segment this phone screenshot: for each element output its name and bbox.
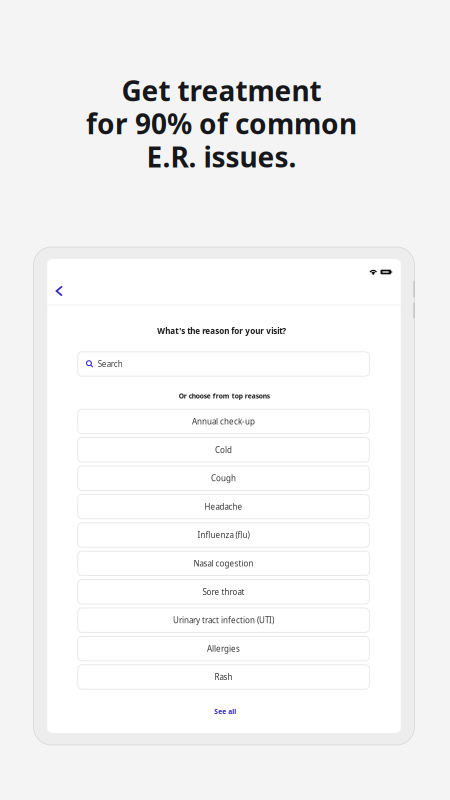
staticText: Urinary tract infection (UTI) bbox=[173, 615, 274, 625]
button[interactable]: Cough bbox=[78, 466, 369, 490]
staticText: Cough bbox=[211, 473, 236, 483]
staticText: for 90% of common bbox=[86, 105, 357, 142]
staticText: Allergies bbox=[207, 643, 240, 654]
staticText: Nasal cogestion bbox=[194, 558, 254, 569]
staticText: E.R. issues. bbox=[146, 138, 296, 175]
button[interactable]: Search bbox=[78, 352, 369, 376]
staticText: Get treatment bbox=[121, 72, 321, 109]
button[interactable]: Headache bbox=[78, 494, 369, 519]
button[interactable]: Urinary tract infection (UTI) bbox=[78, 608, 369, 632]
staticText: Annual check-up bbox=[192, 416, 255, 427]
staticText: Rash bbox=[215, 672, 233, 682]
button[interactable]: Rash bbox=[78, 665, 369, 689]
button[interactable]: Back bbox=[48, 280, 70, 302]
button[interactable]: Annual check-up bbox=[78, 409, 369, 434]
button[interactable]: Nasal cogestion bbox=[78, 551, 369, 576]
button[interactable]: Allergies bbox=[78, 636, 369, 661]
button[interactable]: Influenza (flu) bbox=[78, 523, 369, 547]
staticText: Cold bbox=[215, 444, 232, 455]
staticText: Influenza (flu) bbox=[198, 530, 250, 540]
button[interactable]: Cold bbox=[78, 438, 369, 462]
staticText: Or choose from top reasons bbox=[179, 391, 270, 400]
staticText: Sore throat bbox=[203, 586, 245, 597]
button[interactable]: Sore throat bbox=[78, 580, 369, 604]
staticText: Search bbox=[98, 359, 123, 369]
staticText: Headache bbox=[205, 501, 243, 512]
staticText: What's the reason for your visit? bbox=[157, 326, 286, 336]
staticText: See all bbox=[214, 707, 236, 716]
button[interactable]: See all bbox=[203, 705, 247, 717]
